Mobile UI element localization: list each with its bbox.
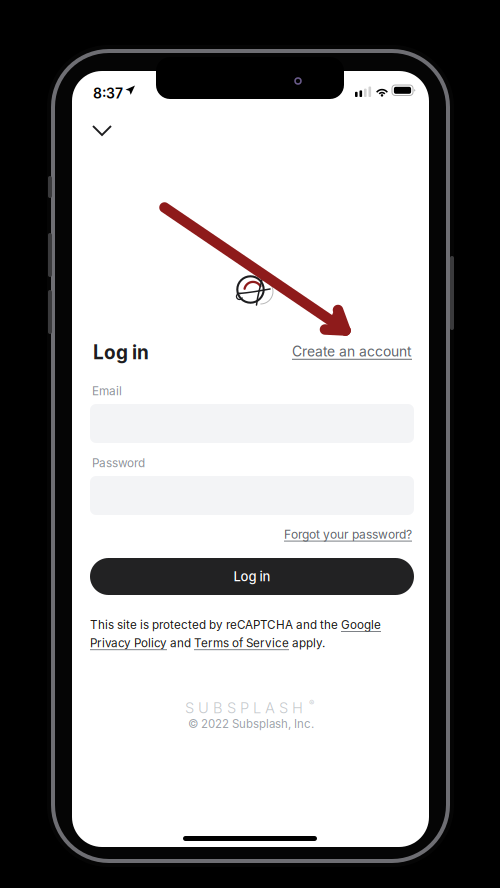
staticText: 8:37 [93,85,123,102]
staticText: ® [309,698,314,708]
staticText: Log in [93,341,149,364]
staticText: Email [92,384,122,398]
staticText: Create an account [292,343,412,360]
button[interactable]: Log in [90,558,414,595]
staticText: Password [92,456,145,470]
button[interactable]: Forgot your password? [90,527,412,541]
button[interactable]: Create an account [90,343,412,360]
staticText: SUBSPLASH [185,699,303,717]
staticText: Log in [233,569,270,584]
staticText: Privacy Policy and Terms of Service appl… [90,636,325,650]
button[interactable]: Close [82,111,122,149]
staticText: © 2022 Subsplash, Inc. [188,717,314,731]
staticText: This site is protected by reCAPTCHA and … [90,618,381,632]
staticText: Forgot your password? [284,527,412,541]
